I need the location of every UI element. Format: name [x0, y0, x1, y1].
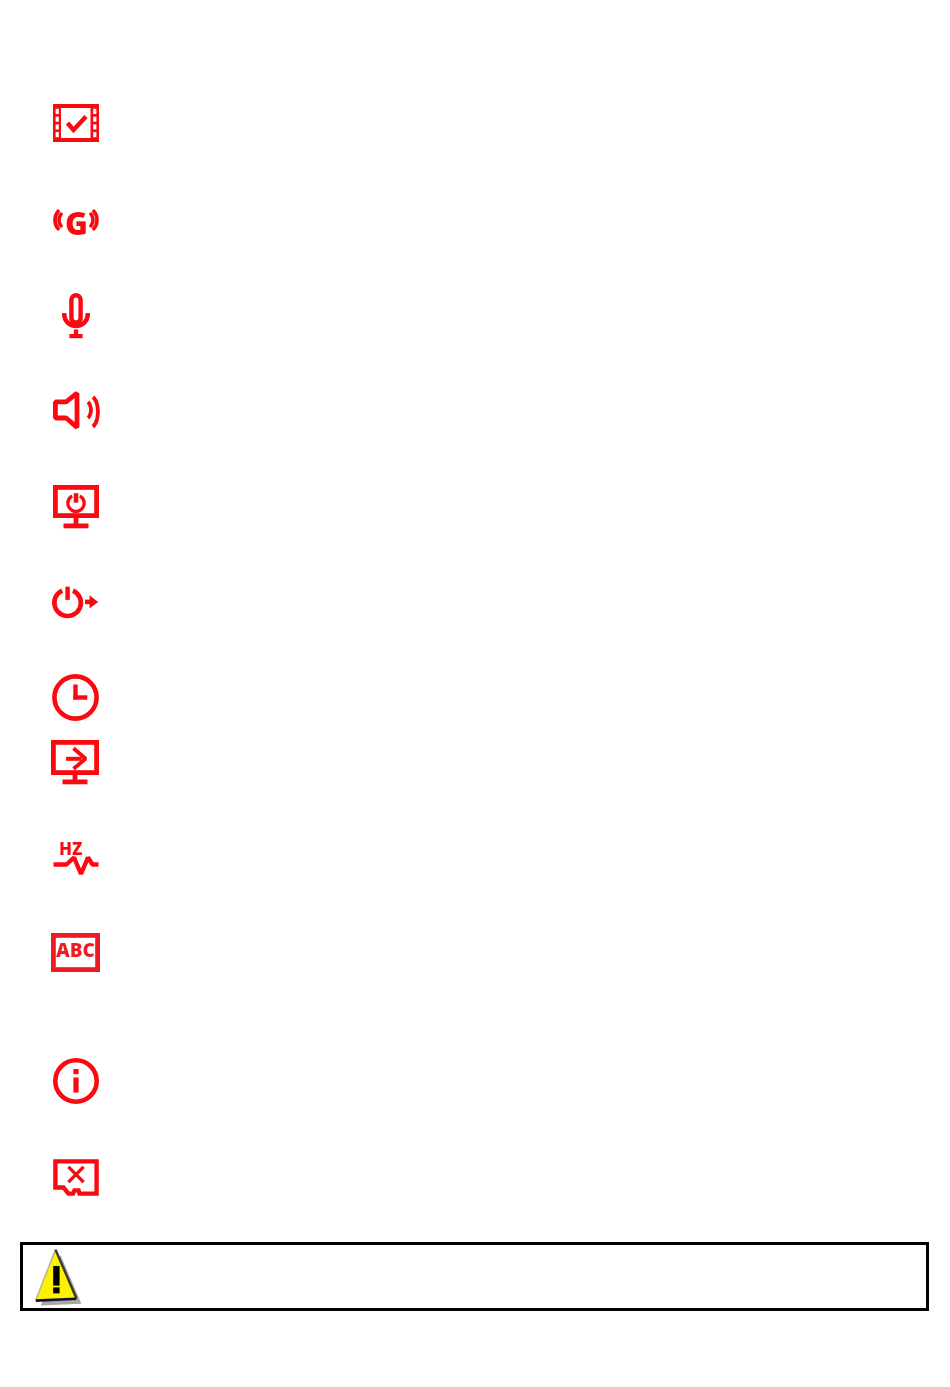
button[interactable]: Power off: [53, 584, 99, 618]
button[interactable]: Display input: [51, 740, 99, 785]
button[interactable]: Comments off: [53, 1159, 99, 1196]
button[interactable]: Microphone: [61, 292, 91, 340]
button[interactable]: Speaker volume: [53, 390, 99, 431]
button[interactable]: Frequency: [53, 838, 99, 877]
button[interactable]: Timer: [52, 674, 99, 721]
button[interactable]: Subtitles: [51, 933, 100, 972]
staticText: ABC: [56, 937, 95, 963]
staticText: HZ: [59, 837, 83, 860]
button[interactable]: Recording complete: [53, 104, 99, 142]
button[interactable]: Display power: [53, 485, 99, 528]
button[interactable]: Broadcast signal: [53, 203, 99, 237]
button[interactable]: Caution note: [20, 1242, 929, 1311]
button[interactable]: Information: [53, 1058, 99, 1104]
staticText: G: [65, 202, 88, 244]
